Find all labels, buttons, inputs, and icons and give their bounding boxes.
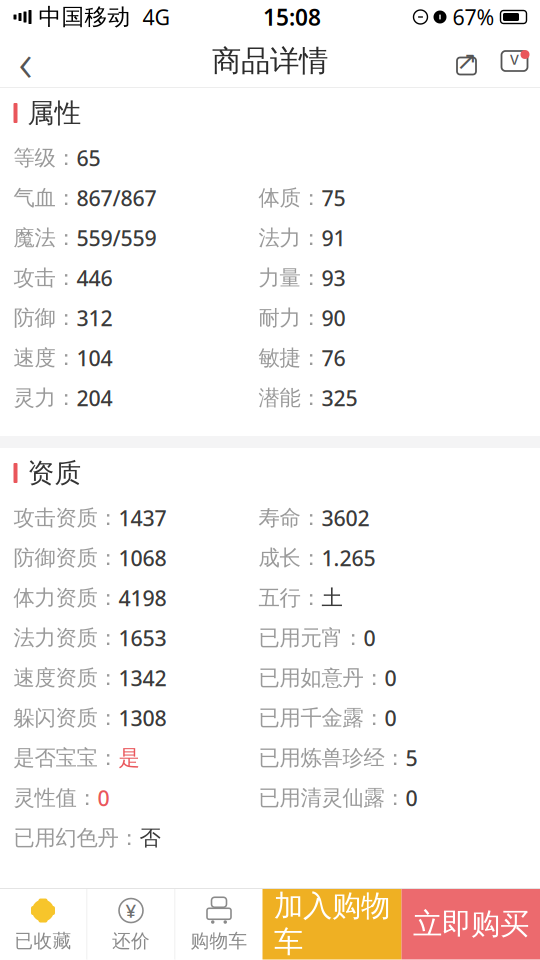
button[interactable]: Share <box>444 34 488 88</box>
staticText: 0 <box>363 624 375 652</box>
staticText: 灵性值： <box>13 785 97 811</box>
staticText: 耐力： <box>258 305 321 331</box>
staticText: 灵力： <box>13 385 76 411</box>
button[interactable]: 购物车 <box>175 888 262 959</box>
staticText: 等级： <box>13 145 76 171</box>
staticText: 立即购买 <box>413 906 529 942</box>
staticText: 1653 <box>118 624 166 652</box>
staticText: 法力： <box>258 225 321 251</box>
staticText: 是 <box>118 745 139 771</box>
staticText: 体质： <box>258 185 321 211</box>
staticText: 体力资质： <box>13 585 118 611</box>
staticText: 1.265 <box>321 544 375 572</box>
staticText: 75 <box>321 184 345 212</box>
staticText: 90 <box>321 304 345 332</box>
staticText: 潜能： <box>258 385 321 411</box>
staticText: 0 <box>405 784 417 812</box>
staticText: 寿命： <box>258 505 321 531</box>
staticText: 攻击： <box>13 265 76 291</box>
staticText: ¥ <box>125 898 136 923</box>
staticText: 已用元宵： <box>258 625 363 651</box>
staticText: 已收藏 <box>14 929 71 952</box>
staticText: 1068 <box>118 544 166 572</box>
staticText: 资质 <box>27 457 81 489</box>
staticText: 已用千金露： <box>258 705 384 731</box>
button[interactable]: Back <box>0 34 51 88</box>
staticText: 104 <box>76 344 112 372</box>
staticText: 93 <box>321 264 345 292</box>
staticText: 中国移动 <box>31 3 130 31</box>
staticText: 0 <box>97 784 109 812</box>
staticText: 76 <box>321 344 345 372</box>
staticText: 法力资质： <box>13 625 118 651</box>
staticText: 1342 <box>118 664 166 692</box>
staticText: 加入购物车 <box>274 888 390 960</box>
staticText: 还价 <box>112 929 150 952</box>
staticText: v <box>510 46 519 69</box>
staticText: 3602 <box>321 504 369 532</box>
button[interactable]: 加入购物车 <box>262 888 401 959</box>
staticText: 气血： <box>13 185 76 211</box>
staticText: 已用清灵仙露： <box>258 785 405 811</box>
staticText: 0 <box>384 704 396 732</box>
button[interactable]: Messages <box>488 34 540 88</box>
staticText: 购物车 <box>190 929 247 952</box>
staticText: 已用如意丹： <box>258 665 384 691</box>
staticText: 力量： <box>258 265 321 291</box>
staticText: 成长： <box>258 545 321 571</box>
staticText: 魔法： <box>13 225 76 251</box>
staticText: 65 <box>76 144 100 172</box>
staticText: 防御资质： <box>13 545 118 571</box>
staticText: 4198 <box>118 584 166 612</box>
staticText: 446 <box>76 264 112 292</box>
staticText: 559/559 <box>76 224 156 252</box>
staticText: 商品详情 <box>212 43 328 79</box>
staticText: 属性 <box>27 97 81 129</box>
staticText: 4G <box>130 3 170 31</box>
staticText: 敏捷： <box>258 345 321 371</box>
staticText: 速度： <box>13 345 76 371</box>
staticText: 防御： <box>13 305 76 331</box>
staticText: 是否宝宝： <box>13 745 118 771</box>
button[interactable]: ¥ <box>87 888 174 959</box>
staticText: ‹ <box>18 26 32 96</box>
button[interactable]: 立即购买 <box>401 888 540 959</box>
staticText: 已用幻色丹： <box>13 825 139 851</box>
staticText: 攻击资质： <box>13 505 118 531</box>
staticText: ↗ <box>456 47 477 75</box>
staticText: 躲闪资质： <box>13 705 118 731</box>
staticText: 67% <box>452 3 494 31</box>
staticText: 1437 <box>118 504 166 532</box>
staticText: 0 <box>384 664 396 692</box>
staticText: 204 <box>76 384 112 412</box>
staticText: 已用炼兽珍经： <box>258 745 405 771</box>
staticText: 五行： <box>258 585 321 611</box>
staticText: 5 <box>405 744 417 772</box>
staticText: 速度资质： <box>13 665 118 691</box>
staticText: 土 <box>321 585 342 611</box>
staticText: 1308 <box>118 704 166 732</box>
staticText: 312 <box>76 304 112 332</box>
staticText: 325 <box>321 384 357 412</box>
staticText: 15:08 <box>263 2 321 32</box>
button[interactable]: 已收藏 <box>0 888 86 959</box>
staticText: 否 <box>139 825 160 851</box>
staticText: 867/867 <box>76 184 156 212</box>
staticText: 91 <box>321 224 345 252</box>
